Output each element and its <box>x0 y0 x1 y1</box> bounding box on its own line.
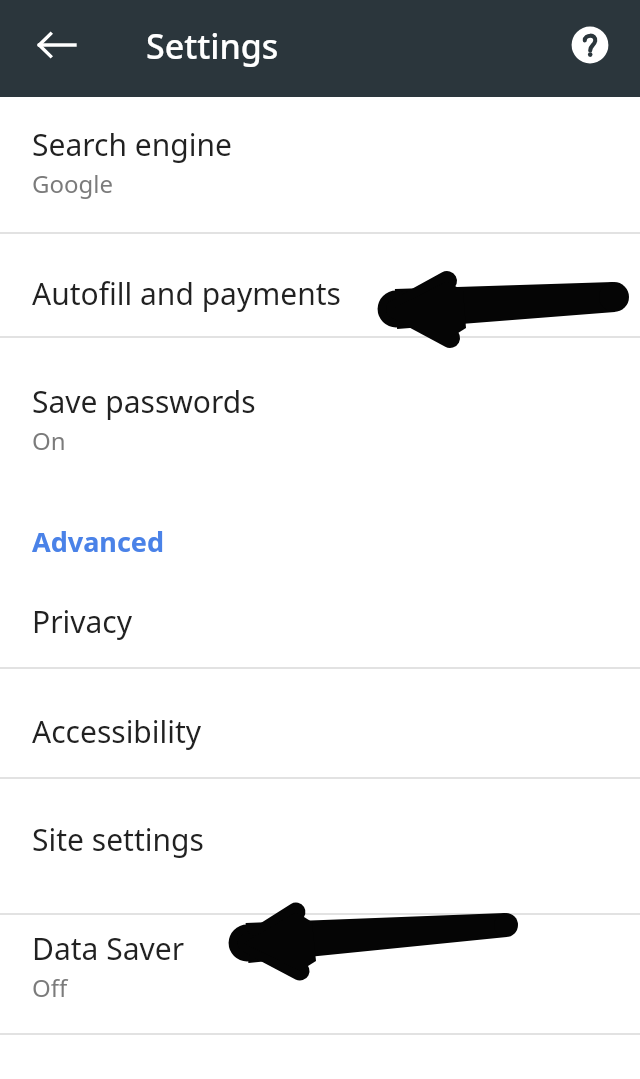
staticText: Google <box>32 167 113 200</box>
button[interactable]: Autofill and payments <box>0 232 640 336</box>
staticText: Advanced <box>32 523 165 560</box>
button[interactable]: Data Saver <box>0 913 640 1033</box>
button[interactable]: Site settings <box>0 777 640 913</box>
staticText: Autofill and payments <box>32 273 341 314</box>
staticText: Accessibility <box>32 711 202 752</box>
staticText: Settings <box>146 23 279 69</box>
button[interactable]: Back <box>21 9 93 81</box>
button[interactable]: Accessibility <box>0 667 640 777</box>
staticText: Data Saver <box>32 928 185 969</box>
staticText: On <box>32 424 66 457</box>
staticText: Save passwords <box>32 381 256 422</box>
staticText: Privacy <box>32 601 133 642</box>
button[interactable]: Save passwords <box>0 336 640 470</box>
button[interactable]: Help <box>554 9 626 81</box>
staticText: Off <box>32 971 68 1004</box>
button[interactable]: Search engine <box>0 98 640 232</box>
staticText: Search engine <box>32 124 232 165</box>
button[interactable]: Privacy <box>0 564 640 667</box>
staticText: Site settings <box>32 819 204 860</box>
